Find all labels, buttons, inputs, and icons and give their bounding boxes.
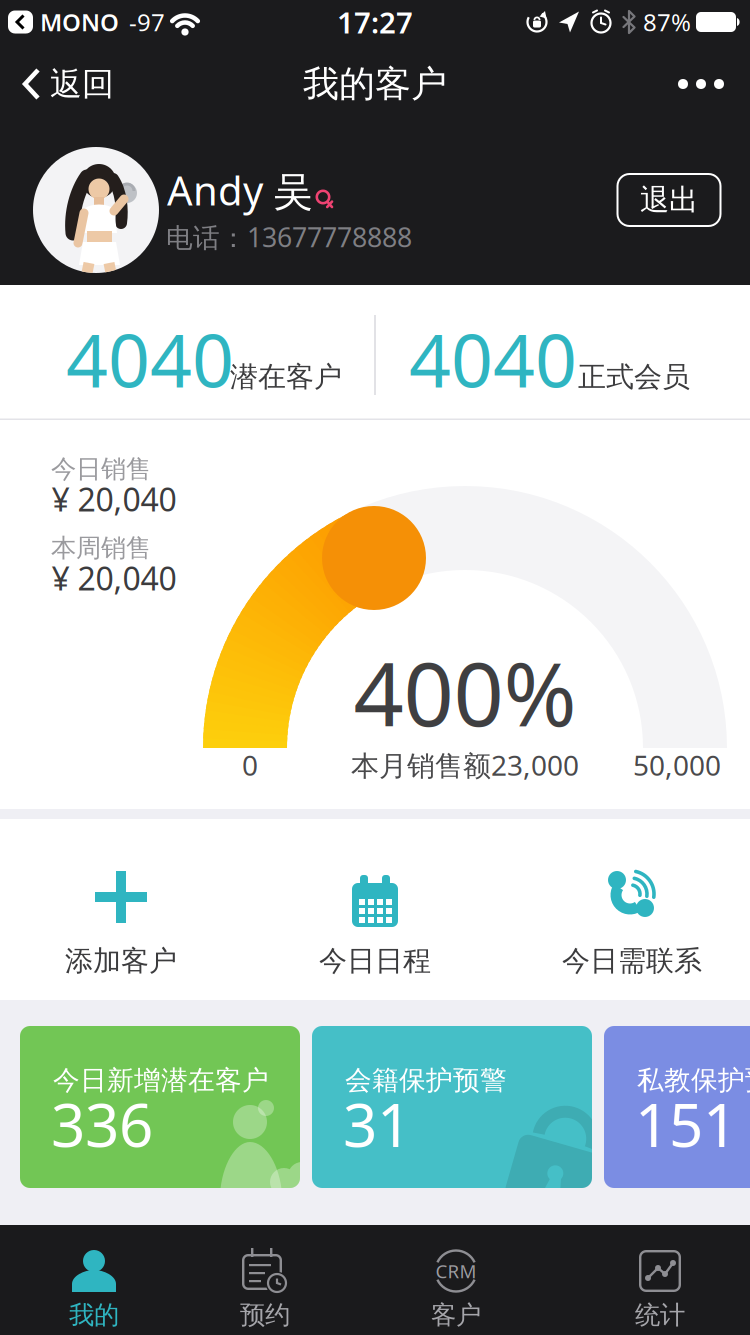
staticText: 返回 bbox=[50, 64, 114, 104]
button[interactable]: 今日日程 bbox=[250, 819, 500, 1000]
button[interactable]: 今日新增潜在客户 bbox=[20, 1026, 300, 1188]
button[interactable]: 私教保护预警 bbox=[604, 1026, 750, 1188]
staticText: 今日需联系 bbox=[562, 944, 702, 978]
button[interactable]: 今日需联系 bbox=[500, 819, 750, 1000]
staticText: 统计 bbox=[635, 1299, 685, 1330]
staticText: 今日销售 bbox=[51, 453, 151, 484]
staticText: ¥ 20,040 bbox=[51, 478, 176, 520]
staticText: ¥ 20,040 bbox=[51, 557, 176, 599]
button[interactable]: CRM bbox=[342, 1225, 570, 1335]
staticText: 电话：13677778888 bbox=[166, 219, 412, 255]
button[interactable]: 返回 bbox=[0, 64, 114, 104]
staticText: 336 bbox=[51, 1084, 153, 1164]
button[interactable]: 我的 bbox=[0, 1225, 188, 1335]
staticText: 客户 bbox=[431, 1299, 481, 1330]
staticText: 31 bbox=[343, 1084, 411, 1164]
staticText: 今日新增潜在客户 bbox=[53, 1064, 269, 1097]
staticText: 添加客户 bbox=[65, 944, 177, 978]
staticText: -97 bbox=[129, 6, 165, 38]
staticText: 退出 bbox=[640, 182, 698, 218]
staticText: 4040 bbox=[66, 310, 234, 408]
button[interactable]: 预约 bbox=[188, 1225, 342, 1335]
staticText: Andy 吴 bbox=[167, 163, 313, 217]
staticText: 正式会员 bbox=[578, 360, 690, 394]
staticText: CRM bbox=[435, 1259, 476, 1283]
staticText: 0 bbox=[242, 746, 258, 784]
staticText: 预约 bbox=[240, 1299, 290, 1330]
button[interactable]: 会籍保护预警 bbox=[312, 1026, 592, 1188]
button[interactable]: 退出 bbox=[616, 173, 721, 227]
staticText: 87% bbox=[643, 6, 691, 38]
staticText: MONO bbox=[40, 6, 119, 38]
staticText: 4040 bbox=[409, 310, 577, 408]
staticText: 今日日程 bbox=[319, 944, 431, 978]
staticText: 私教保护预警 bbox=[637, 1064, 750, 1097]
staticText: 我的客户 bbox=[303, 62, 447, 106]
button[interactable]: 统计 bbox=[570, 1225, 750, 1335]
staticText: 会籍保护预警 bbox=[345, 1064, 507, 1097]
staticText: 400% bbox=[353, 634, 576, 750]
staticText: 17:27 bbox=[337, 2, 413, 41]
staticText: 潜在客户 bbox=[230, 360, 342, 394]
button[interactable]: 更多 bbox=[678, 79, 750, 89]
staticText: 50,000 bbox=[633, 746, 721, 784]
staticText: 151 bbox=[635, 1084, 737, 1164]
button[interactable]: 添加客户 bbox=[0, 819, 250, 1000]
staticText: 我的 bbox=[69, 1299, 119, 1330]
staticText: 本月销售额23,000 bbox=[351, 746, 579, 784]
staticText: 本周销售 bbox=[51, 532, 151, 563]
